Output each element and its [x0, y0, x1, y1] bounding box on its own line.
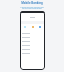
staticText: Mobile Banking [21, 1, 43, 5]
staticText: A simple and clean checkout flow for you… [20, 6, 44, 10]
